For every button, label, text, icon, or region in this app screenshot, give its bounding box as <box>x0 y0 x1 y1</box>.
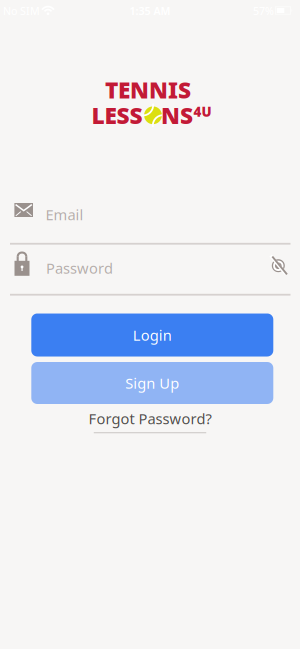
staticText: Login <box>133 325 172 345</box>
staticText: TENNIS <box>105 75 191 105</box>
staticText: Forgot Password? <box>88 409 211 428</box>
staticText: Sign Up <box>125 373 179 393</box>
button[interactable]: Email <box>10 202 290 244</box>
button[interactable]: Password <box>10 250 290 295</box>
staticText: Email <box>45 205 83 224</box>
staticText: Password <box>46 258 113 278</box>
button[interactable]: Sign Up <box>31 362 273 404</box>
button[interactable]: Login <box>31 313 273 356</box>
staticText: 1:35 AM <box>129 4 170 18</box>
button[interactable]: Forgot Password? <box>88 409 211 433</box>
button[interactable]: Show password <box>269 256 288 275</box>
staticText: NS <box>161 100 193 130</box>
staticText: LESS <box>91 100 142 130</box>
staticText: 4U <box>193 103 211 120</box>
